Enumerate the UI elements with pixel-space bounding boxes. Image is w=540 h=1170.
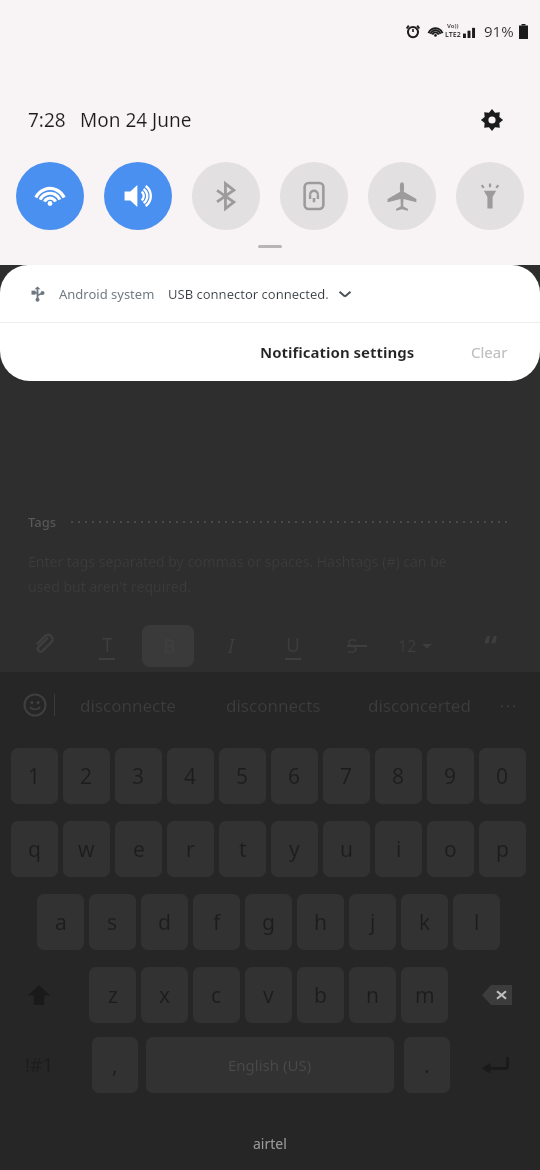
staticText: 7:28 <box>28 107 66 133</box>
button[interactable]: d <box>141 894 188 950</box>
staticText: l <box>474 908 480 937</box>
staticText: s <box>107 908 118 937</box>
staticText: u <box>340 835 353 864</box>
staticText: 8 <box>392 762 405 791</box>
button[interactable]: disconnects <box>200 672 346 738</box>
staticText: Vo)) <box>447 22 459 30</box>
button[interactable]: disconcerted <box>346 672 492 738</box>
button[interactable]: 6 <box>271 748 318 804</box>
button[interactable]: Sound <box>104 162 172 230</box>
staticText: U <box>286 632 300 658</box>
staticText: used but aren't required. <box>28 577 192 596</box>
button[interactable]: 8 <box>375 748 422 804</box>
button[interactable]: g <box>245 894 292 950</box>
staticText: z <box>108 981 118 1010</box>
staticText: 12 <box>398 635 417 657</box>
staticText: o <box>444 835 457 864</box>
button[interactable]: Settings <box>472 100 512 140</box>
button[interactable]: 0 <box>479 748 526 804</box>
staticText: Android system <box>59 285 155 303</box>
button[interactable]: 5 <box>219 748 266 804</box>
staticText: 9 <box>444 762 457 791</box>
button[interactable]: h <box>297 894 344 950</box>
button[interactable]: U <box>272 625 314 667</box>
staticText: p <box>496 835 509 864</box>
staticText: 0 <box>496 762 509 791</box>
button[interactable]: disconnecte <box>55 672 200 738</box>
button[interactable]: Backspace <box>466 967 528 1023</box>
button[interactable]: 2 <box>63 748 110 804</box>
staticText: y <box>289 835 300 864</box>
staticText: r <box>186 835 195 864</box>
button[interactable]: Emoji <box>16 686 54 724</box>
button[interactable]: k <box>401 894 448 950</box>
button[interactable]: Attach <box>22 622 64 664</box>
staticText: airtel <box>253 1134 287 1153</box>
button[interactable]: Flashlight <box>456 162 524 230</box>
staticText: 4 <box>184 762 197 791</box>
staticText: USB connector connected. <box>168 285 329 303</box>
staticText: ⋯ <box>499 695 517 716</box>
button[interactable]: Screen lock <box>280 162 348 230</box>
staticText: d <box>158 908 171 937</box>
button[interactable]: Wi-Fi <box>16 162 84 230</box>
staticText: English (US) <box>228 1055 312 1075</box>
button[interactable]: 9 <box>427 748 474 804</box>
button[interactable]: Clear <box>461 334 518 370</box>
button[interactable]: 4 <box>167 748 214 804</box>
staticText: x <box>159 981 171 1010</box>
button[interactable]: p <box>479 821 526 877</box>
staticText: a <box>55 908 67 937</box>
button[interactable]: m <box>401 967 448 1023</box>
button[interactable]: Android system <box>0 265 540 322</box>
button[interactable]: w <box>63 821 110 877</box>
button[interactable]: q <box>11 821 58 877</box>
staticText: . <box>424 1051 430 1080</box>
button[interactable]: Bluetooth <box>192 162 260 230</box>
staticText: disconnecte <box>80 694 176 717</box>
staticText: q <box>28 835 41 864</box>
button[interactable]: Airplane mode <box>368 162 436 230</box>
staticText: 2 <box>80 762 93 791</box>
staticText: c <box>211 981 222 1010</box>
staticText: , <box>112 1051 118 1080</box>
button[interactable]: Notification settings <box>250 334 425 370</box>
staticText: 1 <box>28 762 41 791</box>
staticText: w <box>78 835 95 864</box>
button[interactable]: b <box>297 967 344 1023</box>
